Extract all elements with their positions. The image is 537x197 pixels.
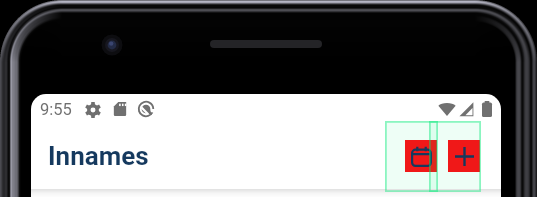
staticText: 9:55 xyxy=(40,100,72,119)
button[interactable]: Add xyxy=(448,140,480,172)
staticText: Innames xyxy=(48,141,149,171)
button[interactable]: Calendar xyxy=(405,140,437,172)
